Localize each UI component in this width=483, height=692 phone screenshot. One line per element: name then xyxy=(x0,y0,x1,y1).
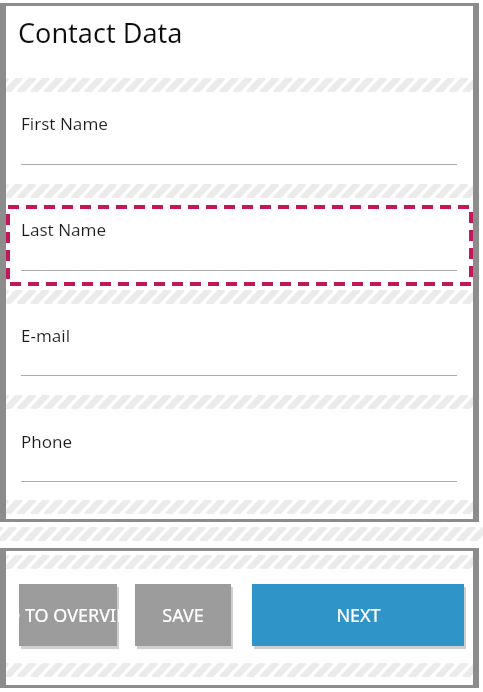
staticText: Phone xyxy=(21,430,73,453)
button[interactable]: SAVE xyxy=(135,584,231,646)
staticText: Last Name xyxy=(21,218,107,241)
button[interactable] xyxy=(6,395,473,495)
button[interactable] xyxy=(6,184,473,284)
staticText: SAVE xyxy=(162,603,204,628)
staticText: NEXT xyxy=(336,603,381,628)
button[interactable]: GO TO OVERVIEW xyxy=(19,584,117,646)
staticText: Contact Data xyxy=(18,14,183,51)
staticText: GO TO OVERVIEW xyxy=(6,603,143,628)
staticText: E-mail xyxy=(21,324,71,347)
button[interactable] xyxy=(6,290,473,390)
staticText: First Name xyxy=(21,112,108,135)
button[interactable] xyxy=(6,78,473,178)
button[interactable]: NEXT xyxy=(252,584,464,646)
